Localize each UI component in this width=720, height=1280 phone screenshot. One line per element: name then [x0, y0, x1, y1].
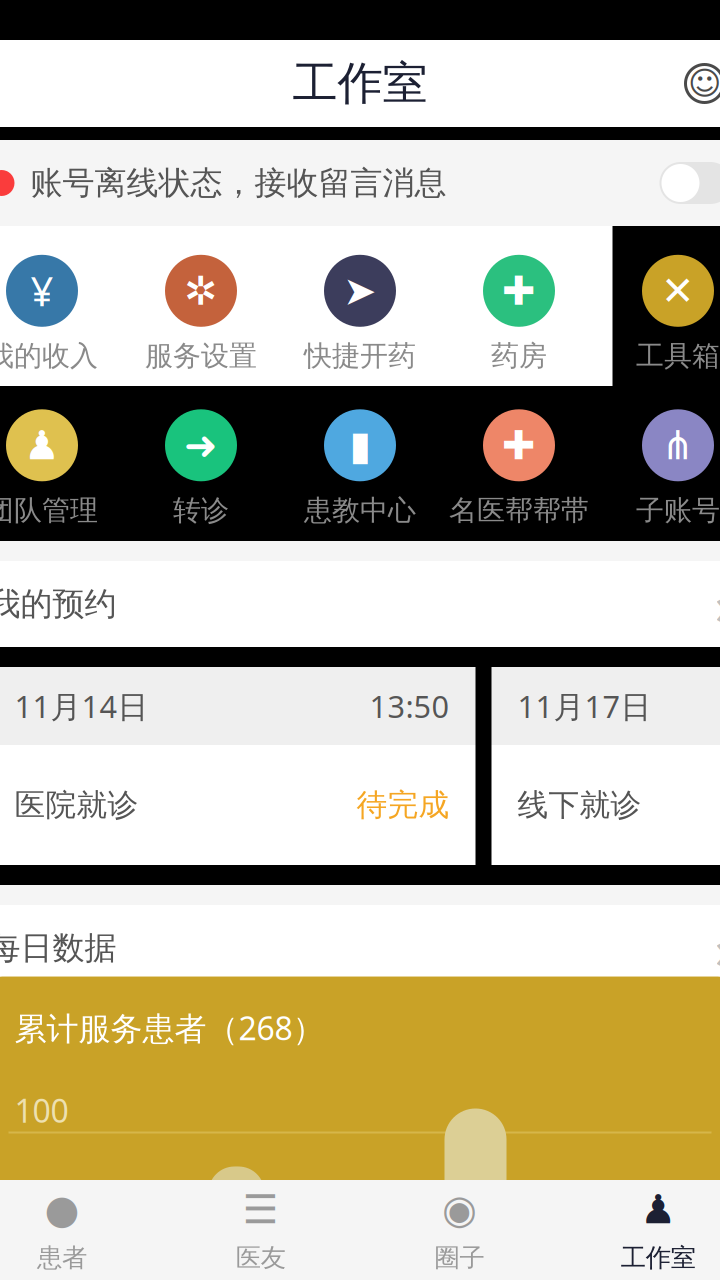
button[interactable]: ◉ — [360, 1180, 559, 1280]
staticText: ♟ — [640, 1187, 676, 1232]
button[interactable]: ➜ — [121, 405, 280, 532]
staticText: 团队管理 — [0, 493, 98, 528]
staticText: › — [714, 913, 720, 983]
staticText: ◉ — [442, 1187, 477, 1232]
button[interactable]: 每日数据 — [0, 905, 720, 991]
staticText: 子账号 — [636, 493, 720, 528]
button[interactable]: 我的预约 — [0, 561, 720, 647]
staticText: ✕ — [661, 268, 695, 313]
staticText: ¥ — [30, 264, 53, 317]
staticText: 转诊 — [173, 493, 229, 528]
button[interactable]: ✚ — [439, 251, 598, 377]
staticText: 医友 — [236, 1242, 286, 1273]
button[interactable]: 账号离线状态，接收留言消息 — [0, 140, 720, 226]
staticText: 每日数据 — [0, 928, 116, 968]
staticText: 累计服务患者（268） — [14, 1006, 324, 1049]
staticText: 待完成 — [356, 786, 449, 824]
staticText: ✲ — [184, 268, 218, 313]
staticText: 圈子 — [434, 1242, 484, 1273]
button[interactable]: ✕ — [598, 251, 720, 377]
staticText: ⋔ — [661, 423, 695, 468]
staticText: ✚ — [502, 423, 536, 468]
button[interactable]: ✲ — [121, 251, 280, 377]
button[interactable]: 11月17日 — [491, 667, 720, 865]
staticText: 账号离线状态，接收留言消息 — [30, 163, 446, 203]
button[interactable]: ✚ — [439, 405, 598, 532]
button[interactable]: ➤ — [280, 251, 439, 377]
staticText: 名医帮帮带 — [449, 493, 589, 528]
staticText: ● — [44, 1187, 79, 1232]
button[interactable]: ☰ — [161, 1180, 360, 1280]
staticText: ✚ — [502, 268, 536, 313]
staticText: ▮ — [349, 423, 371, 468]
staticText: 工具箱 — [636, 339, 720, 373]
staticText: 快捷开药 — [304, 339, 416, 373]
staticText: 线下就诊 — [517, 786, 641, 824]
staticText: 药房 — [491, 339, 547, 373]
staticText: 11月14日 — [14, 686, 148, 726]
staticText: ☺ — [688, 65, 720, 102]
button[interactable]: ▮ — [280, 405, 439, 532]
staticText: 工作室 — [292, 56, 427, 111]
button[interactable]: ● — [0, 1180, 161, 1280]
staticText: ♟ — [24, 423, 60, 468]
button[interactable]: ♟ — [559, 1180, 720, 1280]
staticText: 服务设置 — [145, 339, 257, 373]
staticText: 100 — [14, 1089, 68, 1131]
staticText: ➜ — [184, 423, 218, 468]
button[interactable]: ♟ — [0, 405, 121, 532]
staticText: ➤ — [343, 268, 377, 313]
button[interactable]: 客服 — [669, 48, 720, 118]
staticText: 工作室 — [621, 1242, 696, 1273]
button[interactable]: ⋔ — [598, 405, 720, 532]
staticText: 13:50 — [369, 686, 449, 726]
staticText: 医院就诊 — [14, 786, 138, 824]
staticText: ☰ — [243, 1187, 279, 1232]
button[interactable]: ¥ — [0, 251, 121, 377]
staticText: 11月17日 — [517, 686, 651, 726]
staticText: 患教中心 — [304, 493, 416, 528]
staticText: 我的收入 — [0, 339, 98, 373]
button[interactable]: 11月14日 — [0, 667, 475, 865]
staticText: › — [714, 569, 720, 639]
staticText: 我的预约 — [0, 584, 116, 624]
staticText: 患者 — [37, 1242, 87, 1273]
